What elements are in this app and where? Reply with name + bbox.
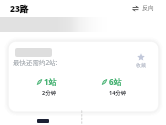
staticText: 6站 — [109, 76, 122, 87]
staticText: 1站 — [44, 76, 57, 87]
staticText: 收藏 — [136, 62, 146, 68]
button[interactable]: 23路 — [10, 3, 29, 15]
staticText: 14分钟 — [109, 89, 127, 97]
button[interactable]: 收藏 — [134, 51, 148, 70]
button[interactable]: 1站 — [35, 73, 69, 95]
button[interactable]: 反向 — [131, 3, 156, 13]
staticText: 最快还需约2站: — [13, 58, 58, 67]
button[interactable]: 最快还需约2站: — [9, 42, 158, 111]
staticText: 反向 — [142, 4, 154, 12]
staticText: 2分钟 — [42, 89, 57, 97]
button[interactable]: 6站 — [100, 73, 134, 95]
